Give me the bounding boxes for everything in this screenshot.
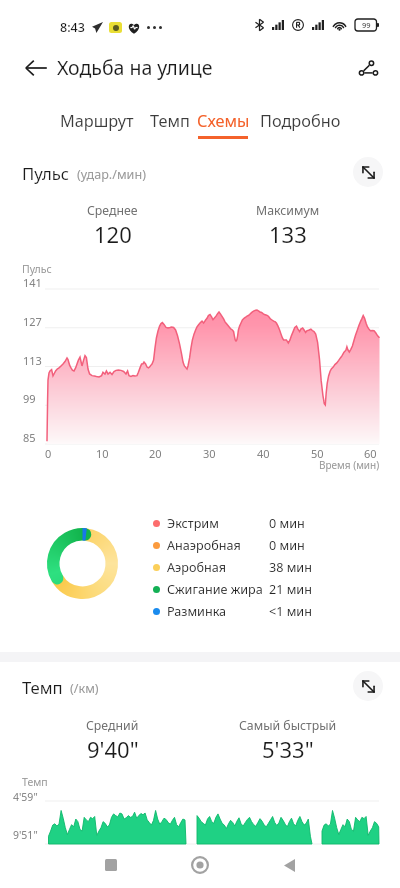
button[interactable]: Главный экран (176, 841, 224, 888)
staticText: <1 мин (269, 603, 312, 620)
button[interactable]: Темп (126, 110, 214, 139)
staticText: Темп (22, 775, 48, 789)
staticText: Самый быстрый (239, 717, 337, 734)
button[interactable]: Развернуть (353, 157, 383, 187)
staticText: Пульс (22, 162, 70, 185)
staticText: 0 мин (269, 537, 305, 554)
staticText: 60 (364, 446, 377, 461)
staticText: Сжигание жира (167, 581, 263, 598)
staticText: Ходьба на улице (57, 54, 213, 81)
staticText: 40 (257, 446, 270, 461)
staticText: Темп (22, 676, 63, 699)
staticText: Пульс (22, 262, 52, 276)
staticText: Средний (86, 717, 139, 734)
button[interactable]: Маршрут (53, 110, 141, 139)
staticText: Анаэробная (167, 537, 241, 554)
staticText: Подробно (260, 110, 341, 132)
button[interactable]: Подробно (256, 110, 344, 139)
staticText: (удар./мин) (77, 166, 146, 183)
staticText: 50 (311, 446, 324, 461)
staticText: 85 (23, 430, 36, 445)
staticText: Темп (150, 110, 190, 132)
staticText: 8:43 (60, 19, 85, 36)
button[interactable]: Недавние приложения (87, 841, 135, 888)
staticText: 133 (269, 219, 307, 249)
staticText: Схемы (197, 110, 250, 132)
staticText: (/км) (70, 680, 99, 697)
staticText: Экстрим (167, 515, 219, 532)
staticText: 21 мин (269, 581, 312, 598)
staticText: 9'40" (87, 734, 139, 764)
staticText: Максимум (256, 202, 320, 219)
staticText: 38 мин (269, 559, 312, 576)
button[interactable]: Назад (265, 841, 313, 888)
staticText: 10 (96, 446, 109, 461)
staticText: 127 (23, 314, 42, 329)
staticText: 5'33" (262, 734, 314, 764)
staticText: Маршрут (60, 110, 134, 132)
button[interactable]: Схемы (179, 110, 267, 139)
staticText: 30 (203, 446, 216, 461)
staticText: Среднее (87, 202, 138, 219)
button[interactable]: Развернуть (353, 671, 383, 701)
staticText: 141 (23, 275, 42, 290)
staticText: 9'51" (13, 828, 38, 842)
button[interactable]: Поделиться (350, 50, 386, 86)
staticText: Аэробная (167, 559, 226, 576)
staticText: Разминка (167, 603, 227, 620)
staticText: 99 (23, 391, 36, 406)
staticText: 4'59" (13, 790, 38, 804)
staticText: 120 (94, 219, 132, 249)
staticText: 20 (149, 446, 162, 461)
staticText: 0 (45, 446, 52, 461)
staticText: Время (мин) (319, 458, 380, 472)
staticText: 113 (23, 353, 42, 368)
staticText: 0 мин (269, 515, 305, 532)
staticText: 99 (362, 20, 371, 30)
button[interactable]: Назад (18, 50, 54, 86)
